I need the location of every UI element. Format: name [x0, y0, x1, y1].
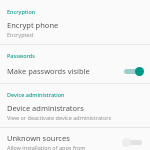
staticText: Unknown sources: [7, 133, 70, 143]
button[interactable]: Toggle off: [122, 135, 144, 149]
staticText: Passwords: [7, 52, 35, 59]
staticText: Encryption: [7, 8, 36, 15]
button[interactable]: Toggle on: [122, 64, 144, 78]
staticText: Encrypt phone: [7, 20, 59, 30]
staticText: View or deactivate device administrators: [7, 114, 112, 121]
button[interactable]: Device administrators: [0, 103, 150, 125]
button[interactable]: Encrypt phone: [0, 20, 150, 42]
staticText: Device administration: [7, 91, 65, 98]
button[interactable]: Make passwords visible: [0, 62, 150, 81]
staticText: Device administrators: [7, 103, 84, 113]
staticText: Allow installation of apps from: [7, 144, 86, 150]
button[interactable]: Unknown sources: [0, 133, 150, 150]
staticText: Encrypted: [7, 31, 34, 38]
staticText: Make passwords visible: [7, 66, 90, 76]
